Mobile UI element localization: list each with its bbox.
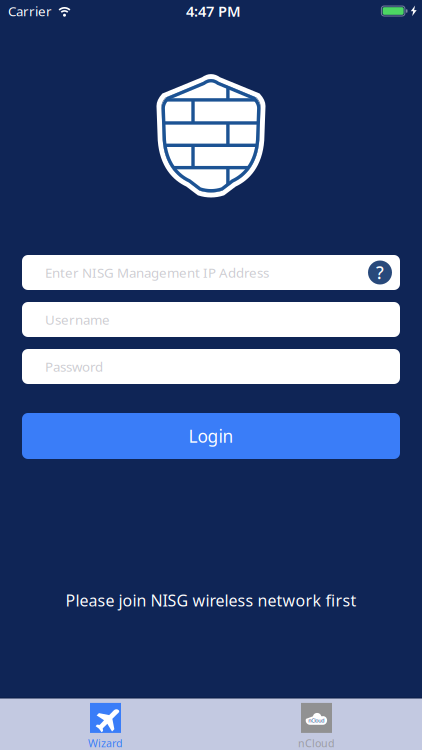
staticText: Wizard <box>88 736 123 750</box>
staticText: 4:47 PM <box>186 1 241 21</box>
button[interactable]: Wizard <box>88 702 123 750</box>
staticText: nCloud <box>308 717 324 724</box>
staticText: nCloud <box>298 736 335 750</box>
button[interactable]: Help <box>365 255 395 290</box>
staticText: Enter NISG Management IP Address <box>45 264 269 281</box>
staticText: Password <box>45 358 103 375</box>
staticText: Carrier <box>8 2 52 20</box>
staticText: Username <box>45 311 110 328</box>
staticText: ? <box>376 261 384 284</box>
button[interactable]: nCloud <box>298 702 335 750</box>
button[interactable]: Login <box>22 413 400 459</box>
staticText: Login <box>188 424 233 447</box>
staticText: Please join NISG wireless network first <box>65 590 356 611</box>
